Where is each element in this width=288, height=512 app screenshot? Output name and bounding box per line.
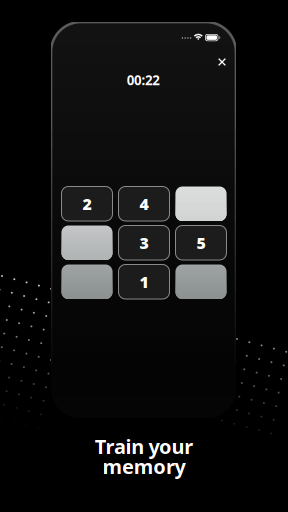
staticText: 3 <box>139 232 148 253</box>
staticText: 2 <box>82 193 91 214</box>
staticText: 1 <box>139 271 148 292</box>
button[interactable]: Tile <box>61 264 112 299</box>
button[interactable]: 3 <box>118 225 169 260</box>
button[interactable]: Close <box>210 50 234 74</box>
staticText: Train your <box>95 433 193 460</box>
button[interactable]: Tile <box>175 186 226 221</box>
button[interactable]: 2 <box>61 186 112 221</box>
button[interactable]: 5 <box>175 225 226 260</box>
button[interactable]: Tile <box>175 264 226 299</box>
button[interactable]: 1 <box>118 264 169 299</box>
button[interactable]: 4 <box>118 186 169 221</box>
staticText: 4 <box>139 193 148 214</box>
staticText: memory <box>102 453 185 480</box>
staticText: 00:22 <box>127 71 160 89</box>
staticText: 5 <box>196 232 205 253</box>
button[interactable]: Tile <box>61 225 112 260</box>
